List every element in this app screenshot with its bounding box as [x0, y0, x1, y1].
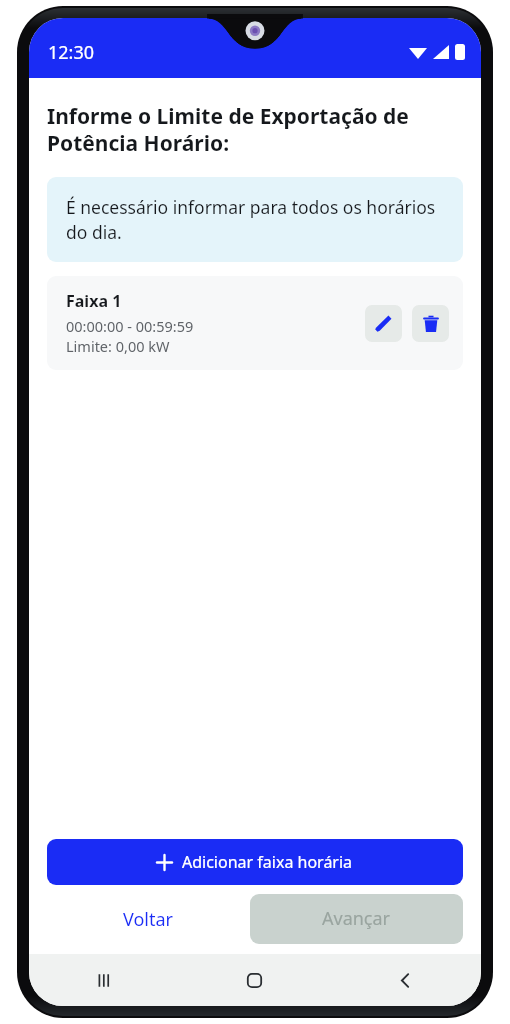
staticText: Faixa 1 [66, 290, 122, 312]
staticText: Voltar [123, 907, 174, 932]
button[interactable]: Excluir faixa [412, 305, 449, 342]
staticText: Informe o Limite de Exportação de Potênc… [47, 102, 469, 157]
button[interactable]: Faixa 1 [47, 276, 463, 370]
staticText: É necessário informar para todos os horá… [66, 195, 444, 244]
button[interactable]: Voltar [330, 954, 481, 1006]
staticText: 00:00:00 - 00:59:59 [66, 316, 194, 336]
staticText: Avançar [322, 906, 391, 931]
staticText: Adicionar faixa horária [182, 851, 353, 873]
button[interactable]: Voltar [47, 894, 250, 944]
button[interactable]: Adicionar faixa horária [47, 839, 463, 885]
staticText: 12:30 [48, 40, 95, 65]
button[interactable]: Avançar [250, 894, 463, 944]
button[interactable]: Início [179, 954, 330, 1006]
staticText: Limite: 0,00 kW [66, 336, 170, 356]
button[interactable]: Editar faixa [365, 305, 402, 342]
button[interactable]: Recentes [29, 954, 179, 1006]
